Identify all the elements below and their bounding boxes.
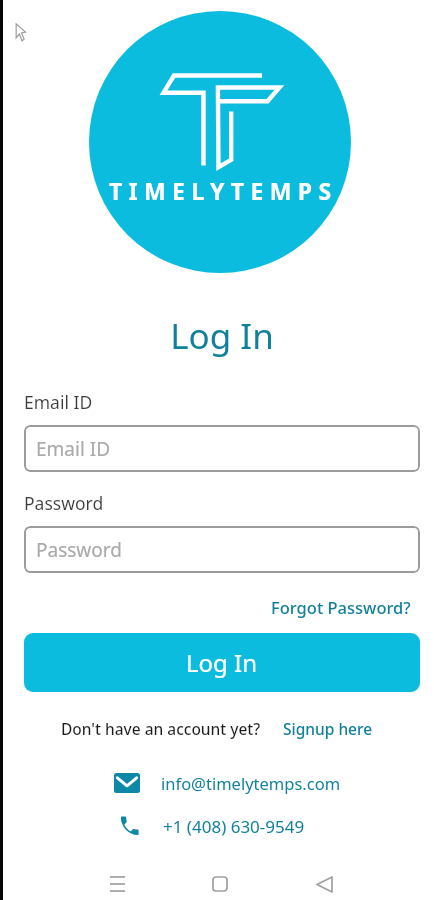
button[interactable]: Email [114, 772, 341, 794]
staticText: Don't have an account yet? [61, 718, 261, 739]
staticText: Forgot Password? [271, 596, 411, 618]
staticText: Password [24, 491, 104, 515]
staticText: Email ID [24, 390, 93, 414]
other: Phone [118, 814, 141, 838]
button[interactable]: Log In [24, 633, 420, 692]
staticText: +1 (408) 630-9549 [163, 815, 305, 838]
button[interactable]: Recents [97, 864, 137, 900]
other: Email [114, 773, 140, 793]
button[interactable]: Back [304, 864, 344, 900]
staticText: Password [36, 537, 122, 563]
staticText: Email ID [36, 436, 111, 462]
button[interactable]: Home [200, 864, 240, 900]
button[interactable]: Signup here [283, 718, 373, 739]
staticText: Signup here [283, 718, 373, 739]
staticText: Log In [186, 646, 258, 679]
button[interactable]: Phone [118, 814, 305, 838]
staticText: info@timelytemps.com [161, 772, 341, 794]
button[interactable]: Email ID [24, 425, 420, 472]
staticText: TIMELYTEMPS [109, 175, 338, 206]
staticText: Log In [170, 312, 274, 360]
button[interactable]: Forgot Password? [271, 596, 411, 618]
button[interactable]: Password [24, 526, 420, 573]
